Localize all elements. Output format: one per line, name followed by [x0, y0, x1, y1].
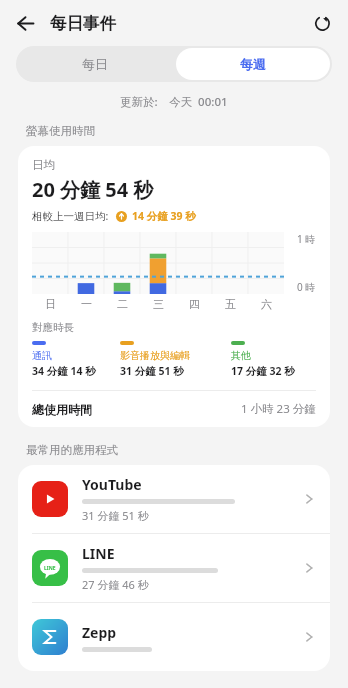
staticText: 通訊: [32, 349, 52, 362]
staticText: 20 分鐘 54 秒: [32, 176, 154, 203]
button[interactable]: LINE: [18, 534, 330, 602]
staticText: 34 分鐘 14 秒: [32, 364, 96, 378]
staticText: 1 時: [297, 232, 316, 246]
staticText: 四: [189, 297, 200, 311]
staticText: 17 分鐘 32 秒: [231, 364, 295, 378]
staticText: 五: [225, 297, 236, 311]
staticText: 總使用時間: [32, 402, 92, 417]
button[interactable]: Zepp: [18, 603, 330, 671]
staticText: 每週: [240, 56, 266, 72]
staticText: 其他: [231, 349, 251, 362]
staticText: 二: [117, 297, 128, 311]
staticText: 1 小時 23 分鐘: [241, 401, 316, 417]
staticText: 每日事件: [50, 13, 116, 34]
staticText: 日均: [32, 158, 55, 172]
staticText: Zepp: [82, 623, 117, 642]
button[interactable]: Back: [6, 4, 44, 42]
staticText: 三: [153, 297, 164, 311]
button[interactable]: YouTube: [18, 465, 330, 533]
button[interactable]: 每日: [16, 46, 174, 82]
staticText: 影音播放與編輯: [120, 349, 190, 362]
staticText: 31 分鐘 51 秒: [82, 508, 149, 523]
staticText: YouTube: [82, 475, 142, 494]
staticText: 六: [261, 297, 272, 311]
staticText: 螢幕使用時間: [26, 124, 95, 138]
staticText: LINE: [44, 565, 56, 572]
staticText: 相較上一週日均:: [32, 209, 109, 223]
staticText: 14 分鐘 39 秒: [132, 209, 196, 223]
staticText: 日: [45, 297, 56, 311]
staticText: LINE: [82, 544, 115, 563]
staticText: 最常用的應用程式: [26, 443, 118, 457]
button[interactable]: 每週: [176, 48, 330, 80]
staticText: 31 分鐘 51 秒: [120, 364, 184, 378]
staticText: 每日: [82, 56, 108, 72]
staticText: 一: [81, 297, 92, 311]
button[interactable]: Refresh: [304, 5, 340, 41]
staticText: 27 分鐘 46 秒: [82, 577, 149, 592]
staticText: 0 時: [297, 280, 316, 294]
staticText: 對應時長: [32, 321, 74, 334]
staticText: 更新於: 今天 00:01: [120, 94, 228, 110]
